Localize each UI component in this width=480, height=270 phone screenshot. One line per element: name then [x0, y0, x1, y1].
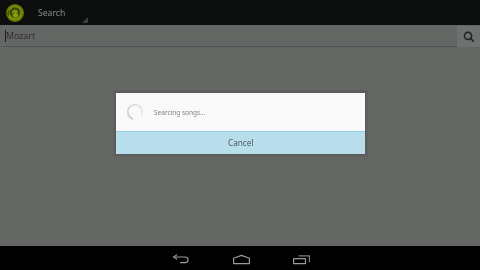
staticText: Mozart	[6, 30, 36, 42]
button[interactable]: Back	[150, 247, 211, 270]
button[interactable]: Mozart	[0, 25, 457, 47]
staticText: Searcing songs...	[154, 108, 206, 117]
staticText: Search	[38, 7, 66, 19]
button[interactable]: Cancel	[116, 131, 365, 154]
button[interactable]: Recent apps	[271, 247, 331, 270]
staticText: Cancel	[228, 137, 254, 148]
button[interactable]: Search	[457, 26, 480, 47]
button[interactable]: Search	[0, 0, 88, 25]
button[interactable]: Home	[211, 247, 271, 270]
